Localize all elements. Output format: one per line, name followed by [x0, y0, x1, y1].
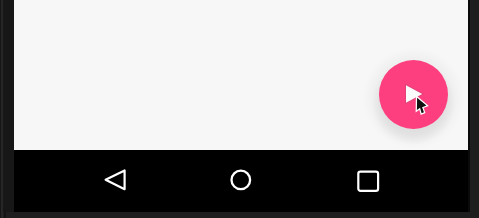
- button[interactable]: Play: [379, 60, 448, 129]
- button[interactable]: Recent apps: [346, 158, 390, 204]
- button[interactable]: Home: [218, 158, 262, 204]
- button[interactable]: Back: [90, 158, 134, 204]
